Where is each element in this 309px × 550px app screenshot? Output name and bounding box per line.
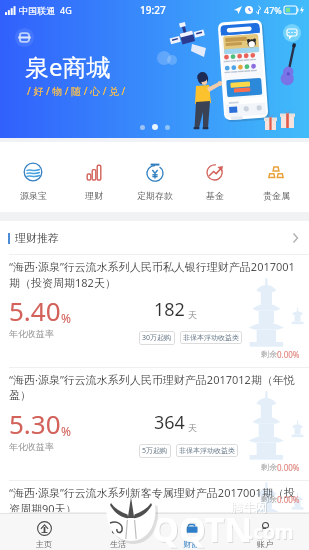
staticText: .com xyxy=(248,519,294,545)
button[interactable]: “海西·源泉”行云流水系列新客专属理财产品2017001期（投资周期90天） xyxy=(0,481,309,513)
button[interactable]: 财富 xyxy=(161,521,221,549)
staticText: 30万起购 xyxy=(142,333,172,343)
staticText: 腾牛网 xyxy=(232,500,268,515)
staticText: 天 xyxy=(188,422,197,433)
button[interactable]: 定期存款 xyxy=(127,162,183,201)
staticText: 19:27 xyxy=(140,3,166,17)
staticText: 剩余 xyxy=(261,494,277,504)
staticText: 非保本浮动收益类 xyxy=(179,446,235,455)
staticText: 非保本浮动收益类 xyxy=(183,333,239,342)
button[interactable]: 基金 xyxy=(187,162,243,201)
button[interactable]: 主页 xyxy=(14,521,74,549)
staticText: 0.00% xyxy=(277,462,300,473)
staticText: 腾牛网 xyxy=(231,499,267,514)
staticText: 理财推荐 xyxy=(15,231,59,245)
staticText: “海西·源泉”行云流水系列人民币私人银行理财产品2017001期（投资周期182… xyxy=(9,259,301,290)
staticText: 贵金属 xyxy=(263,190,290,201)
staticText: 年化收益率 xyxy=(9,328,54,339)
staticText: 47% xyxy=(264,4,282,16)
staticText: 0.00% xyxy=(277,349,300,360)
staticText: 4G xyxy=(60,4,72,16)
button[interactable]: “海西·源泉”行云流水系列人民币理财产品2017012期（年悦盈） xyxy=(0,368,309,481)
staticText: 年化收益率 xyxy=(9,441,54,452)
staticText: 理财 xyxy=(85,190,103,201)
button[interactable]: 源泉宝 xyxy=(5,162,61,201)
staticText: / 好 / 物 / 随 / 心 / 兑 / xyxy=(27,84,126,98)
staticText: 天 xyxy=(178,535,187,546)
staticText: 主页 xyxy=(36,539,52,549)
button[interactable]: 理财推荐 xyxy=(0,221,309,255)
staticText: 5.30 xyxy=(9,406,61,441)
staticText: 生活 xyxy=(110,539,126,549)
staticText: 5万起购 xyxy=(142,446,168,456)
staticText: 剩余 xyxy=(261,462,277,472)
staticText: 182 xyxy=(154,297,185,322)
staticText: 364 xyxy=(154,410,185,435)
staticText: 中国联通 xyxy=(19,5,55,16)
staticText: % xyxy=(61,310,71,326)
staticText: 泉e商城 xyxy=(25,50,111,83)
staticText: 账户 xyxy=(257,539,273,549)
button[interactable]: 账户 xyxy=(235,521,295,549)
staticText: 定期存款 xyxy=(137,190,173,201)
staticText: “海西·源泉”行云流水系列人民币理财产品2017012期（年悦盈） xyxy=(9,372,301,402)
staticText: QQTN xyxy=(152,506,253,550)
button[interactable]: 理财 xyxy=(66,162,122,201)
staticText: 5.40 xyxy=(9,293,61,328)
staticText: 天 xyxy=(188,309,197,320)
staticText: 剩余 xyxy=(261,349,277,359)
staticText: 0.00% xyxy=(277,494,300,505)
staticText: 财富 xyxy=(183,539,199,549)
button[interactable]: “海西·源泉”行云流水系列人民币私人银行理财产品2017001期（投资周期182… xyxy=(0,255,309,368)
button[interactable]: 贵金属 xyxy=(248,162,304,201)
button[interactable]: 生活 xyxy=(88,521,148,549)
staticText: 90 xyxy=(154,523,175,548)
staticText: “海西·源泉”行云流水系列新客专属理财产品2017001期（投资周期90天） xyxy=(9,485,301,516)
staticText: % xyxy=(61,423,71,439)
staticText: 基金 xyxy=(206,190,224,201)
staticText: 5.60 xyxy=(9,519,61,550)
staticText: .com xyxy=(249,520,295,546)
staticText: 源泉宝 xyxy=(20,190,47,201)
staticText: QQTN xyxy=(153,507,254,550)
